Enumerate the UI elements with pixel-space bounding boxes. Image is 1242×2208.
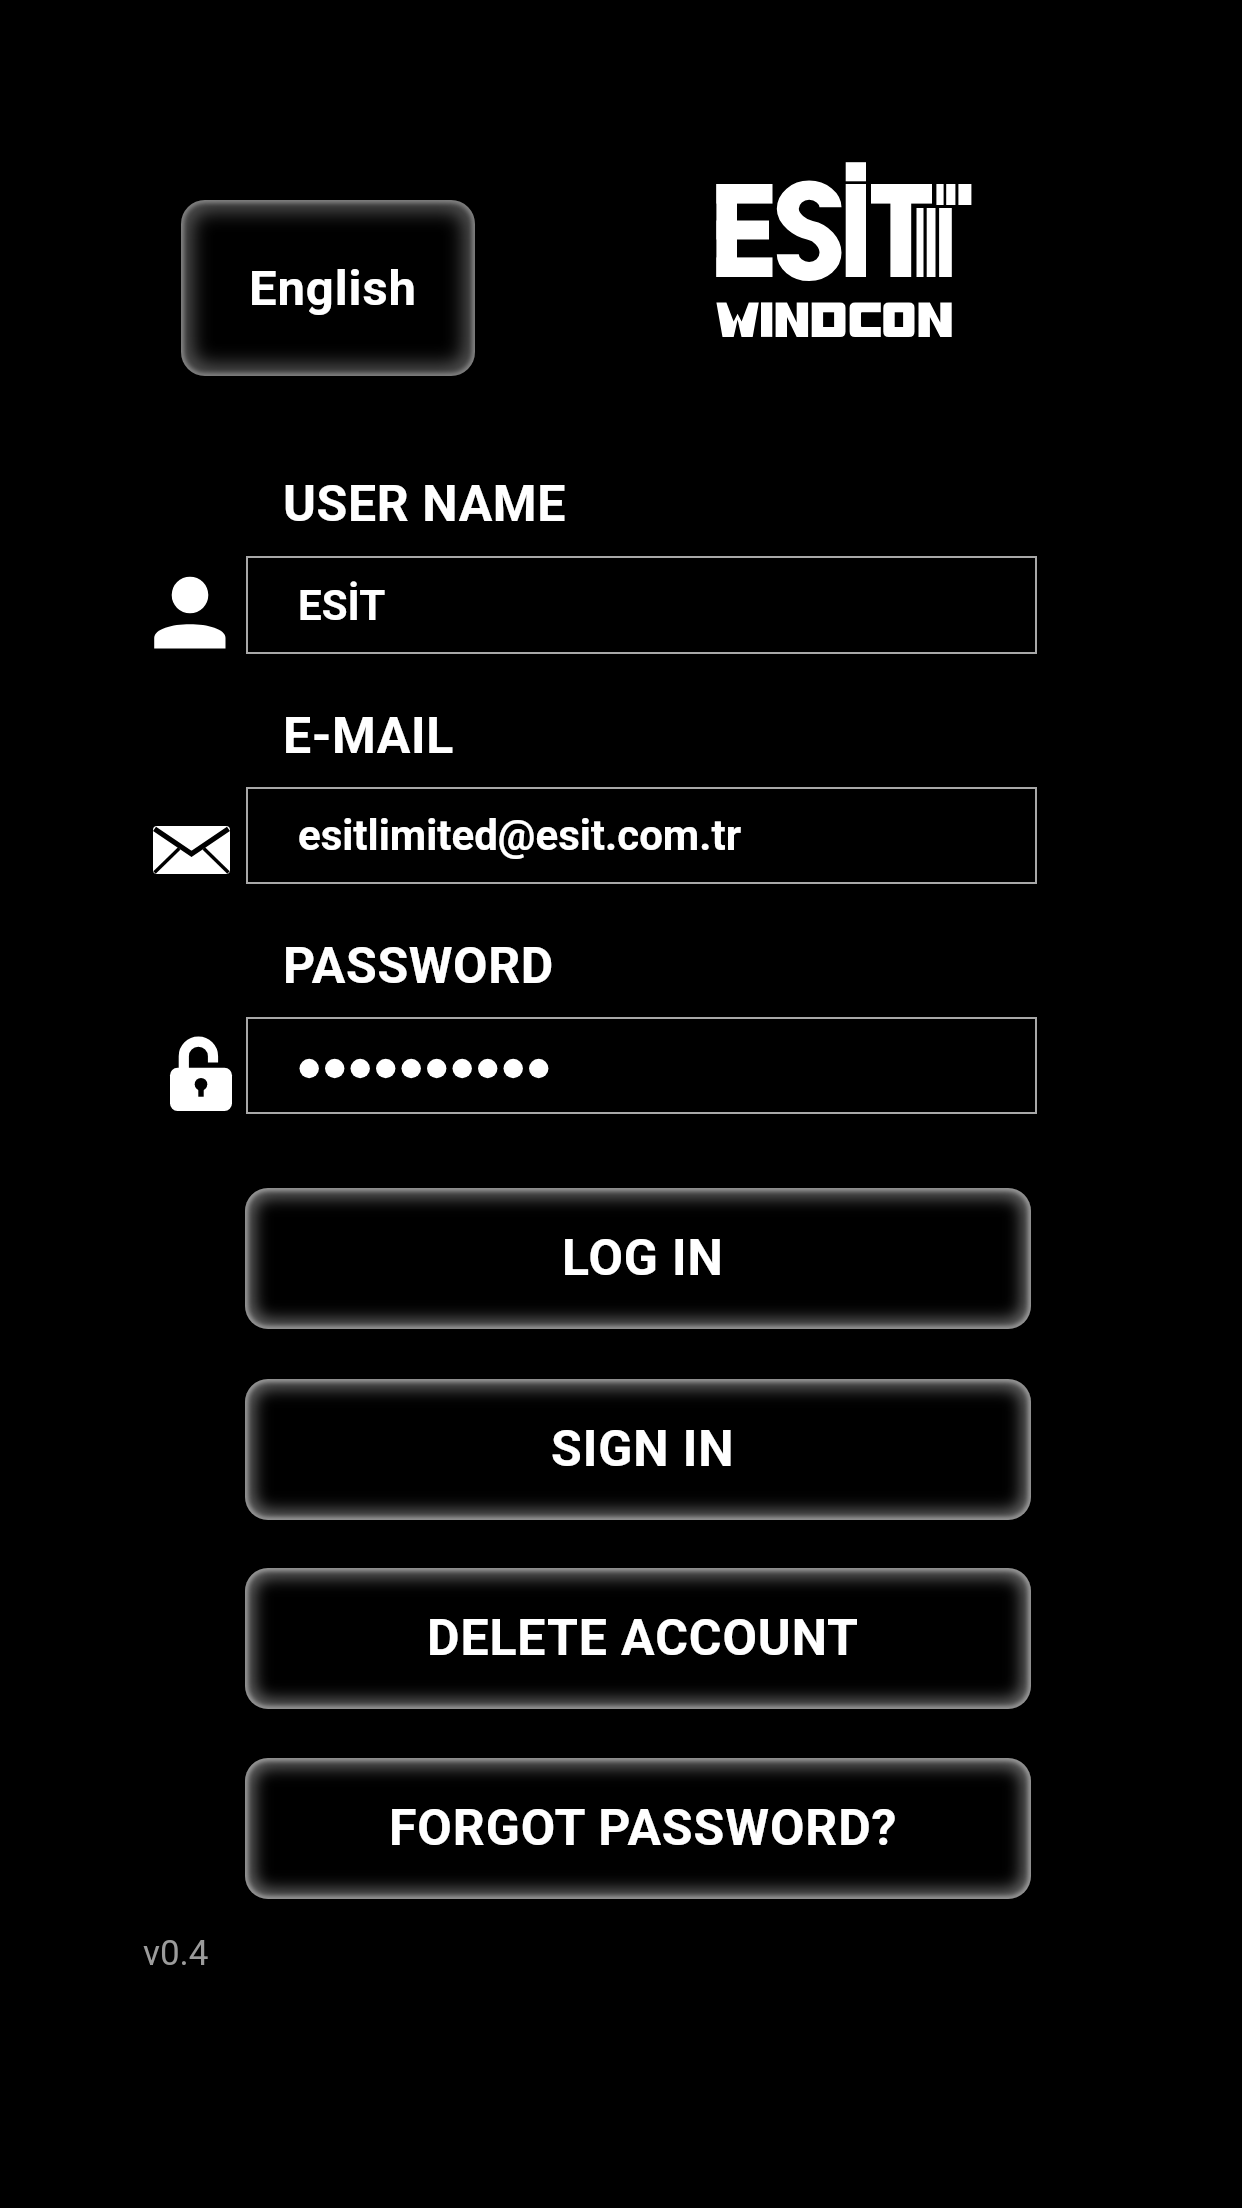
staticText: PASSWORD xyxy=(283,937,554,996)
staticText: LOG IN xyxy=(562,1229,724,1288)
staticText: SIGN IN xyxy=(551,1420,735,1479)
staticText: v0.4 xyxy=(143,1933,209,1974)
button[interactable]: English xyxy=(181,200,475,376)
staticText: USER NAME xyxy=(283,475,566,534)
staticText: English xyxy=(249,260,417,317)
other: ESIT WINDCON logo xyxy=(713,155,975,345)
button[interactable]: LOG IN xyxy=(245,1188,1031,1329)
staticText: DELETE ACCOUNT xyxy=(427,1609,859,1668)
button[interactable]: FORGOT PASSWORD? xyxy=(245,1758,1031,1899)
button[interactable]: E-mail field xyxy=(246,787,1037,884)
button[interactable]: User name field xyxy=(246,556,1037,654)
staticText: E-MAIL xyxy=(283,707,454,766)
button[interactable]: DELETE ACCOUNT xyxy=(245,1568,1031,1709)
staticText: esitlimited@esit.com.tr xyxy=(298,811,742,860)
button[interactable]: SIGN IN xyxy=(245,1379,1031,1520)
button[interactable]: Password field xyxy=(246,1017,1037,1114)
staticText: ESİT xyxy=(298,581,386,630)
staticText: FORGOT PASSWORD? xyxy=(389,1799,898,1858)
